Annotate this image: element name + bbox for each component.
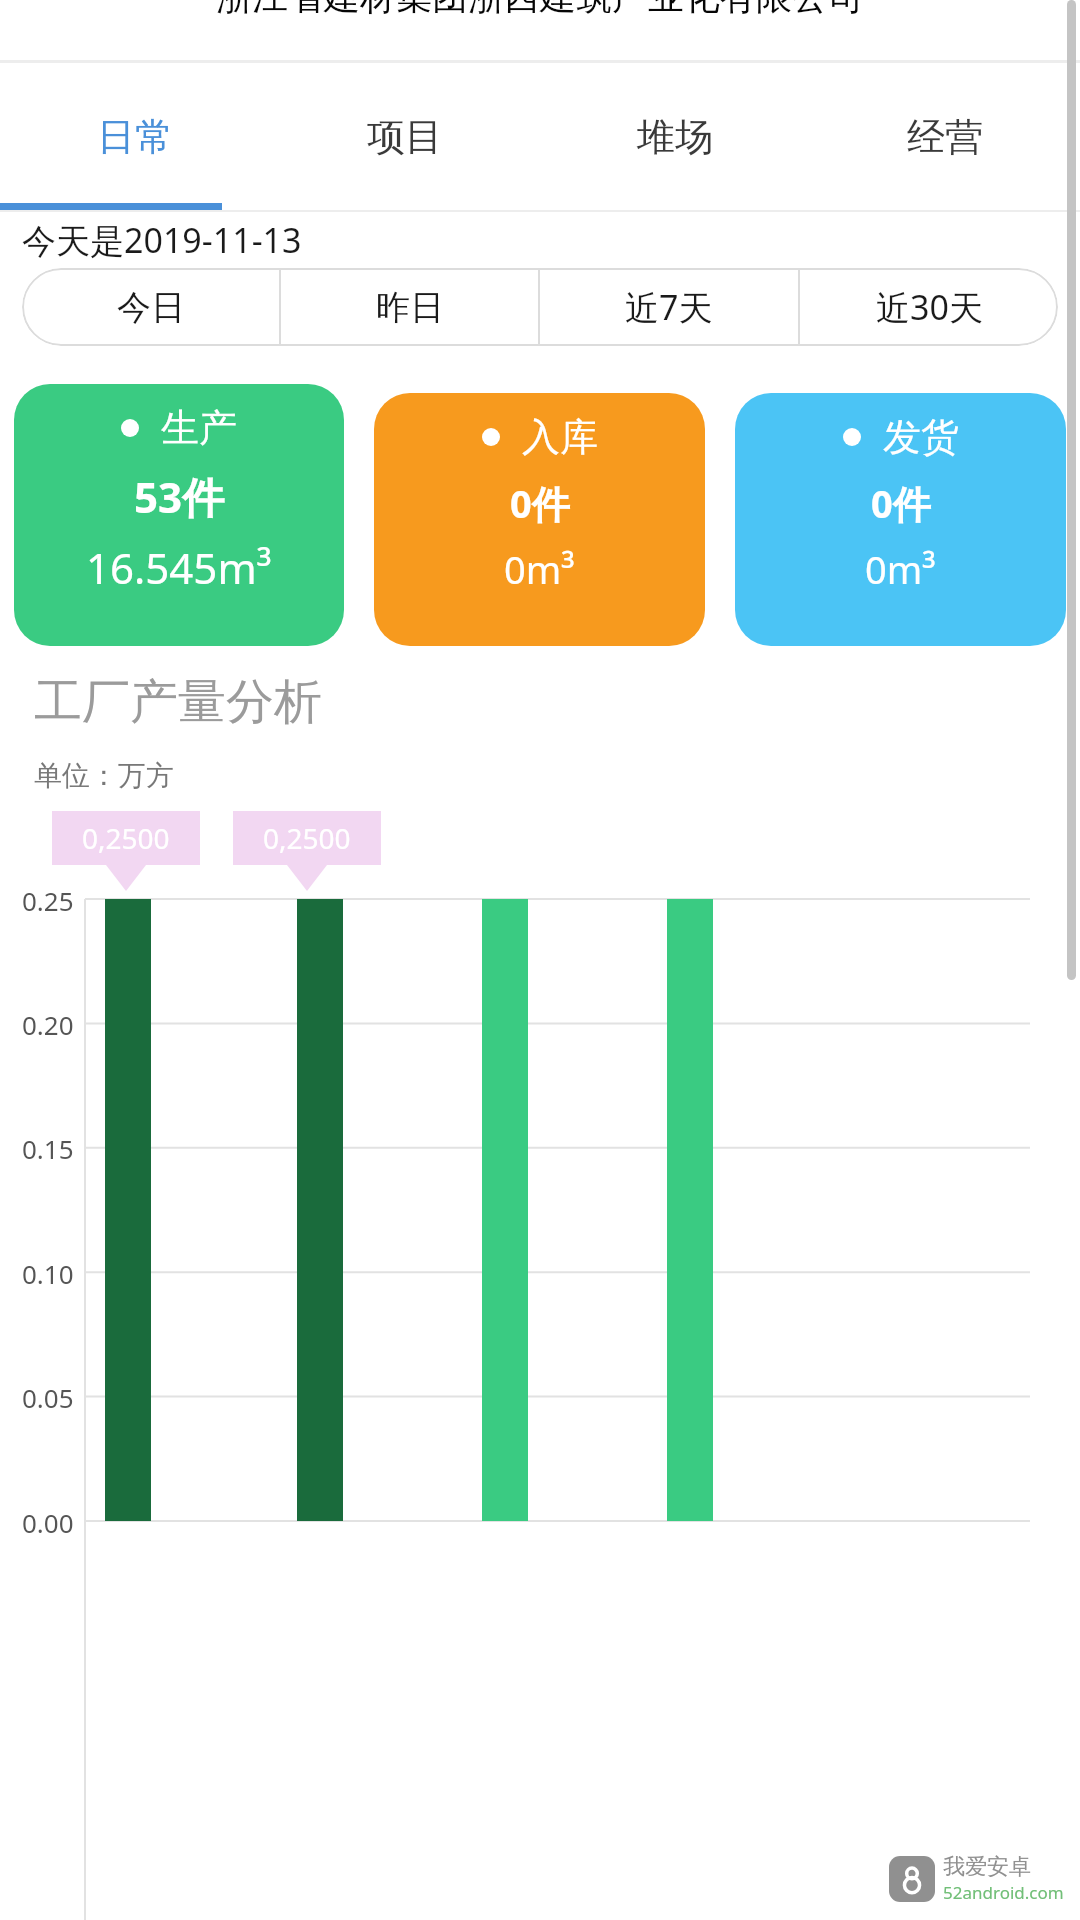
- staticText: 16.545m³: [86, 539, 272, 596]
- button[interactable]: 近30天: [800, 268, 1058, 346]
- staticText: 0.00: [22, 1505, 74, 1540]
- staticText: 项目: [367, 113, 443, 161]
- staticText: 0,2500: [82, 819, 170, 857]
- button[interactable]: 近7天: [540, 268, 798, 346]
- button[interactable]: 今日: [22, 268, 279, 346]
- staticText: 0.15: [22, 1131, 74, 1166]
- staticText: 今天是2019-11-13: [22, 217, 302, 263]
- staticText: 0m³: [865, 543, 936, 595]
- staticText: 浙江省建材集团浙西建筑产业化有限公司: [216, 0, 864, 19]
- staticText: 53件: [134, 468, 225, 525]
- staticText: 0m³: [504, 543, 575, 595]
- staticText: 近7天: [625, 284, 713, 330]
- staticText: 单位：万方: [34, 758, 174, 793]
- staticText: 堆场: [637, 113, 713, 161]
- button[interactable]: 堆场: [540, 63, 810, 210]
- staticText: 经营: [907, 113, 983, 161]
- button[interactable]: 发货: [735, 393, 1066, 646]
- staticText: 52android.com: [943, 1881, 1064, 1904]
- button[interactable]: 昨日: [281, 268, 538, 346]
- staticText: 0.05: [22, 1380, 74, 1415]
- button[interactable]: 日常: [0, 63, 270, 210]
- staticText: 0件: [510, 477, 570, 529]
- staticText: 近30天: [876, 284, 983, 330]
- button[interactable]: 项目: [270, 63, 540, 210]
- staticText: 发货: [883, 413, 959, 461]
- other: Watermark logo: [889, 1856, 935, 1902]
- staticText: 0,2500: [263, 819, 351, 857]
- staticText: 我爱安卓: [943, 1853, 1031, 1881]
- button[interactable]: 生产: [14, 384, 344, 646]
- staticText: 今日: [117, 286, 185, 329]
- staticText: 0.10: [22, 1256, 74, 1291]
- button[interactable]: 入库: [374, 393, 705, 646]
- staticText: 0.25: [22, 883, 74, 918]
- staticText: 日常: [97, 113, 173, 161]
- staticText: 入库: [522, 413, 598, 461]
- staticText: 0.20: [22, 1007, 74, 1042]
- staticText: 0件: [871, 477, 931, 529]
- button[interactable]: 经营: [810, 63, 1080, 210]
- staticText: 工厂产量分析: [34, 672, 322, 732]
- staticText: 生产: [161, 404, 237, 452]
- staticText: 昨日: [376, 286, 444, 329]
